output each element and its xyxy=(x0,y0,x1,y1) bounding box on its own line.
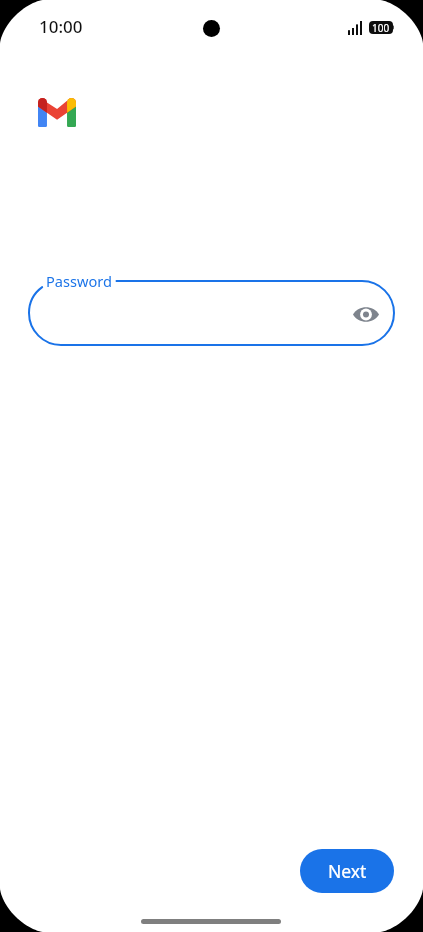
button[interactable]: Show password xyxy=(342,290,390,338)
button[interactable]: Password xyxy=(29,271,394,355)
staticText: Password xyxy=(46,271,113,291)
button[interactable]: Next xyxy=(300,849,394,893)
staticText: Next xyxy=(328,859,367,883)
staticText: 100 xyxy=(372,21,390,34)
staticText: 10:00 xyxy=(39,15,83,38)
